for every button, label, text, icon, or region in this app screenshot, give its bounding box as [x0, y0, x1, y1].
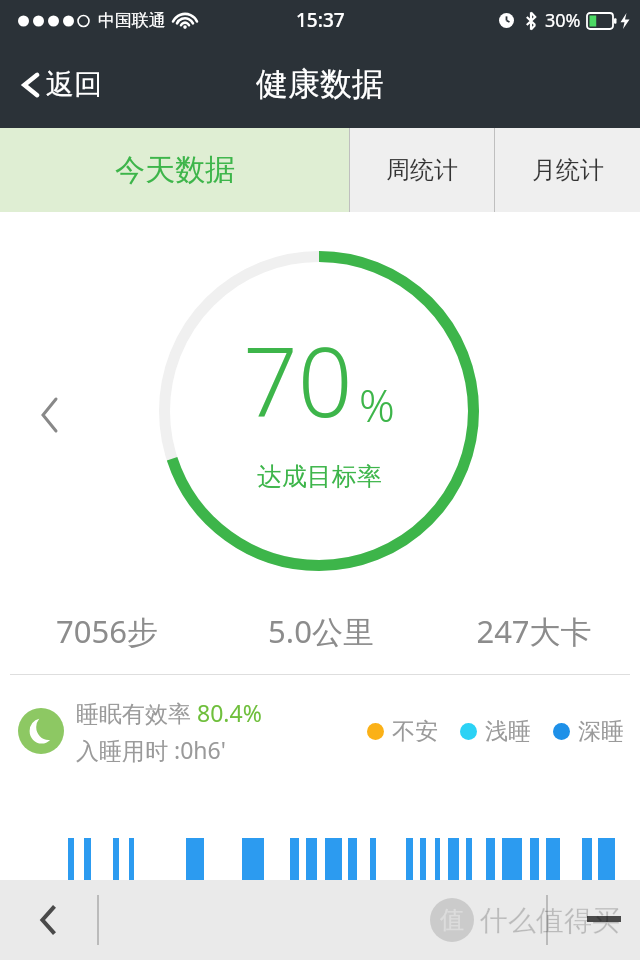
- staticText: 不安: [392, 717, 438, 746]
- staticText: 30%: [545, 8, 581, 33]
- button[interactable]: 返回: [14, 59, 108, 110]
- staticText: 月统计: [532, 155, 604, 185]
- staticText: 70: [243, 314, 353, 445]
- staticText: 达成目标率: [257, 461, 382, 492]
- staticText: 247大卡: [476, 610, 592, 652]
- button[interactable]: 周统计: [350, 128, 494, 212]
- staticText: 入睡用时 :0h6': [76, 734, 226, 765]
- staticText: 深睡: [578, 717, 624, 746]
- staticText: 中国联通: [98, 10, 166, 31]
- staticText: 5.0公里: [268, 610, 374, 652]
- button[interactable]: 今天数据: [0, 128, 349, 212]
- staticText: 80.4%: [197, 697, 262, 728]
- staticText: 今天数据: [115, 151, 235, 189]
- button[interactable]: 月统计: [495, 128, 640, 212]
- staticText: 浅睡: [485, 717, 531, 746]
- staticText: 返回: [46, 67, 102, 102]
- staticText: 15:37: [296, 7, 345, 33]
- staticText: 睡眠有效率: [76, 697, 197, 728]
- staticText: %: [359, 375, 395, 435]
- staticText: 7056步: [56, 610, 158, 652]
- staticText: 值: [440, 905, 464, 935]
- staticText: 什么值得买: [480, 903, 620, 938]
- button[interactable]: Back: [26, 897, 72, 943]
- button[interactable]: Menu: [580, 896, 628, 944]
- button[interactable]: Previous day: [30, 395, 70, 435]
- staticText: 周统计: [386, 155, 458, 185]
- staticText: 健康数据: [256, 64, 384, 104]
